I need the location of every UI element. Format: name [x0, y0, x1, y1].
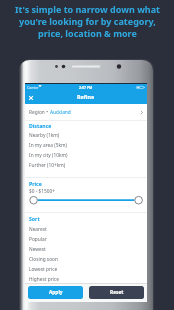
staticText: $0 - $1500+ — [29, 188, 55, 195]
button[interactable]: Apply — [28, 286, 83, 299]
button[interactable]: Nearest — [25, 224, 147, 234]
staticText: price, location & more — [38, 27, 137, 39]
button[interactable]: Closing soon — [25, 254, 147, 264]
staticText: Auckland — [50, 109, 71, 116]
staticText: you're looking for by category, — [19, 15, 156, 27]
staticText: Newest — [29, 246, 46, 253]
button[interactable]: Popular — [25, 234, 147, 244]
button[interactable]: $0 - $1500+ — [25, 186, 147, 196]
staticText: It's simple to narrow down what — [15, 3, 160, 15]
staticText: Highest price — [29, 276, 59, 283]
staticText: Apply — [49, 289, 63, 296]
staticText: • — [45, 109, 50, 116]
button[interactable]: Close — [27, 94, 35, 102]
button[interactable]: In my area (5km) — [25, 140, 147, 150]
button[interactable]: Newest — [25, 244, 147, 254]
button[interactable]: Highest price — [25, 274, 147, 284]
staticText: Carrier — [27, 85, 39, 90]
staticText: Popular — [29, 236, 47, 243]
button[interactable]: Lowest price — [25, 264, 147, 274]
staticText: Nearby (1km) — [29, 132, 60, 139]
staticText: Distance — [29, 122, 52, 129]
staticText: Reset — [110, 289, 124, 296]
button[interactable]: Region — [25, 104, 147, 120]
staticText: In my area (5km) — [29, 142, 67, 149]
staticText: Region — [29, 109, 45, 116]
button[interactable]: In my city (10km) — [25, 150, 147, 160]
staticText: Price — [29, 180, 42, 187]
staticText: Lowest price — [29, 266, 58, 273]
staticText: Nearest — [29, 226, 47, 233]
staticText: Closing soon — [29, 256, 58, 263]
staticText: 2:07 PM — [79, 85, 93, 90]
staticText: In my city (10km) — [29, 152, 68, 159]
staticText: Refine — [77, 93, 95, 100]
button[interactable]: Reset — [89, 286, 144, 299]
button[interactable]: Further (10+km) — [25, 160, 147, 170]
staticText: Sort — [29, 215, 40, 222]
button[interactable]: Nearby (1km) — [25, 130, 147, 140]
staticText: Further (10+km) — [29, 162, 66, 169]
